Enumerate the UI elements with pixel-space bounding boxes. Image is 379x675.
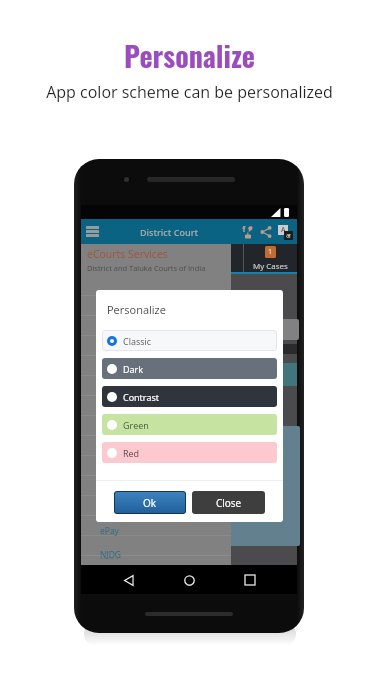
button[interactable] [190,244,243,272]
staticText: Bhanudas [94,496,137,508]
button[interactable]: Contrast [102,386,277,407]
staticText: अ [286,232,291,240]
staticText: My Cases [253,260,288,271]
button[interactable] [81,244,135,272]
button[interactable]: ePay [100,525,119,537]
button[interactable]: Recent apps [237,567,263,593]
button[interactable]: Social links [239,222,257,242]
staticText: A [281,225,286,235]
staticText: App color scheme can be personalized [46,81,333,103]
staticText: District and Taluka Courts of India [87,263,206,273]
button[interactable]: Share [257,222,275,242]
staticText: District Court [99,226,239,238]
staticText: Ok [143,496,157,510]
staticText: Dark [123,363,143,375]
staticText: Close [216,496,242,510]
staticText: Personalize [107,302,166,317]
button[interactable]: Dark [102,358,277,379]
button[interactable]: Open navigation menu [86,226,99,237]
button[interactable]: Home [176,567,202,593]
staticText: Contrast [123,391,159,403]
staticText: Personalize [124,35,255,76]
button[interactable] [136,244,189,272]
staticText: Chaudhari [94,511,138,523]
button[interactable]: Close [192,491,265,514]
staticText: eCourts Services [87,247,168,261]
button[interactable]: Green [102,414,277,435]
button[interactable]: Classic [102,330,277,351]
staticText: 1 [268,247,273,257]
staticText: Classic [123,335,152,347]
staticText: Red [123,447,140,459]
button[interactable]: Back [116,567,142,593]
button[interactable]: Red [102,442,277,463]
staticText: Green [123,419,149,431]
button[interactable]: NJDG [100,549,122,561]
button[interactable]: 1 [244,244,297,272]
button[interactable]: Ok [114,491,186,514]
button[interactable]: Change language [276,222,294,242]
